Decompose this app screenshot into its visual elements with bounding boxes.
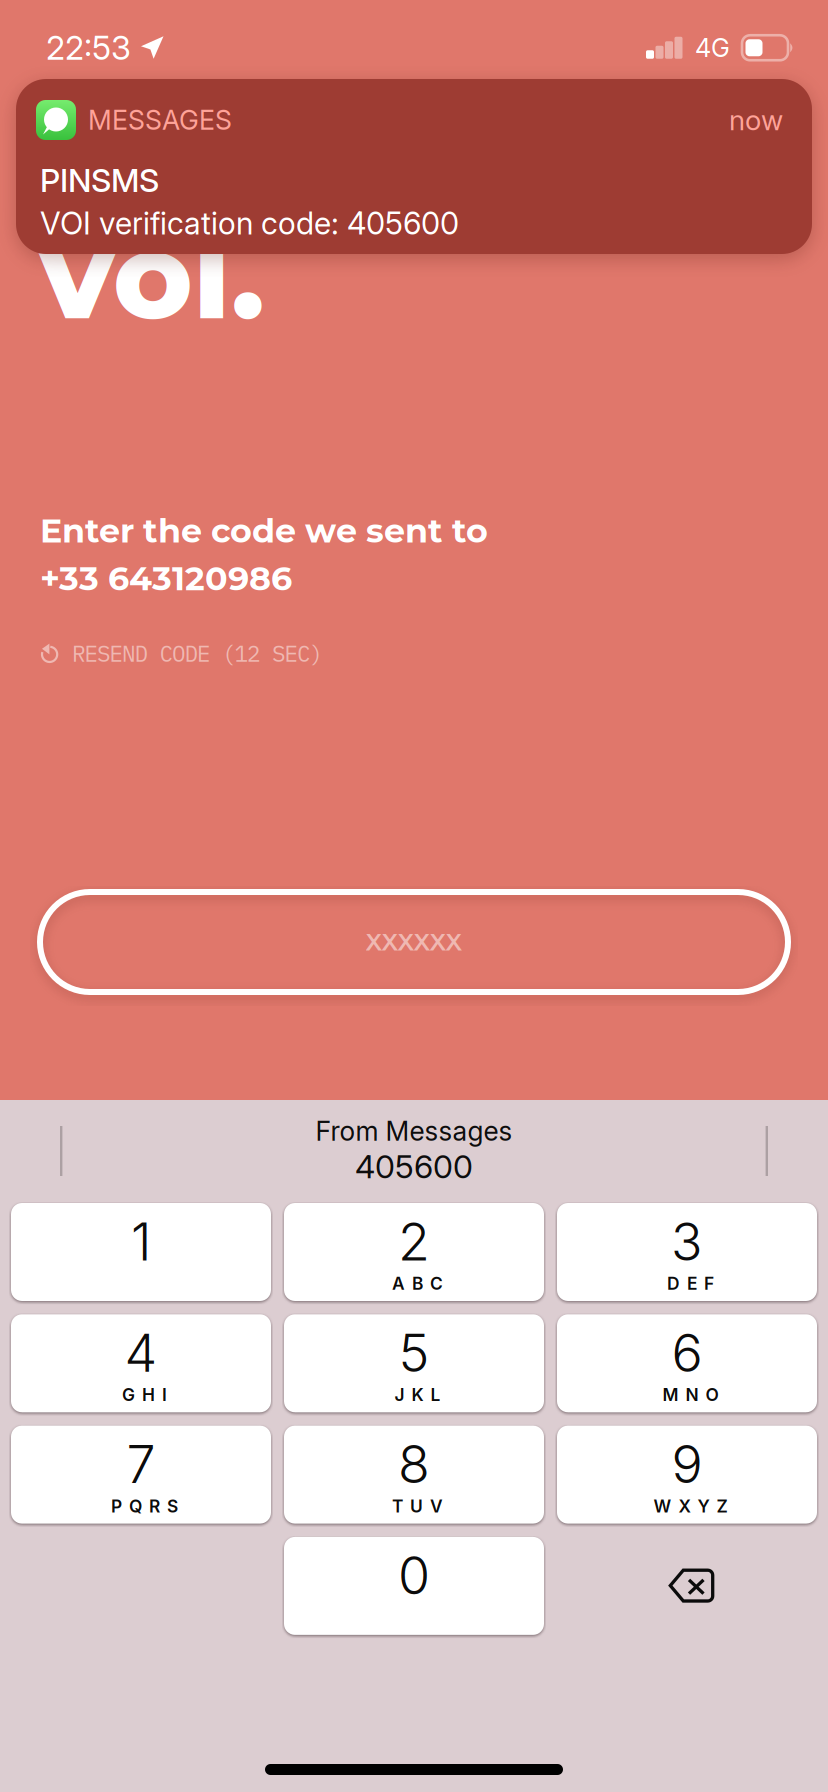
staticText: XXXXXX (365, 927, 462, 957)
staticText: 22:53 (46, 28, 131, 67)
button[interactable]: 9 (557, 1426, 817, 1524)
staticText: 9 (671, 1433, 702, 1495)
button[interactable]: 5 (284, 1314, 544, 1412)
staticText: VOI verification code: 405600 (40, 205, 459, 242)
staticText: RESEND CODE (12 SEC) (72, 638, 323, 668)
staticText: PQRS (111, 1496, 178, 1517)
button[interactable]: 2 (284, 1203, 544, 1301)
staticText: MESSAGES (88, 104, 232, 136)
staticText: voi. (40, 202, 265, 348)
button[interactable]: 0 (284, 1537, 544, 1635)
staticText: TUV (392, 1496, 443, 1517)
button[interactable]: 4 (11, 1314, 271, 1412)
button[interactable]: 7 (11, 1426, 271, 1524)
staticText: 0 (398, 1544, 430, 1607)
button[interactable]: 6 (557, 1314, 817, 1412)
staticText: JKL (394, 1384, 440, 1405)
staticText: 1 (131, 1210, 151, 1273)
staticText: 4G (695, 32, 730, 63)
staticText: 8 (398, 1433, 430, 1495)
staticText: 5 (398, 1321, 429, 1384)
staticText: ABC (392, 1273, 443, 1294)
button[interactable]: From Messages (204, 1100, 624, 1203)
button[interactable]: 8 (284, 1426, 544, 1524)
staticText: GHI (122, 1384, 167, 1405)
staticText: 6 (671, 1321, 702, 1384)
button[interactable]: 3 (557, 1203, 817, 1301)
staticText: Enter the code we sent to (40, 510, 488, 551)
staticText: 405600 (355, 1147, 473, 1186)
button[interactable]: 1 (11, 1203, 271, 1301)
staticText: 7 (126, 1433, 155, 1495)
staticText: MNO (662, 1384, 718, 1405)
staticText: now (729, 103, 783, 137)
staticText: +33 643120986 (40, 558, 292, 598)
staticText: 2 (398, 1210, 430, 1273)
staticText: PINSMS (40, 161, 159, 200)
staticText: From Messages (315, 1115, 512, 1147)
staticText: WXYZ (653, 1496, 727, 1517)
staticText: 3 (671, 1210, 703, 1273)
staticText: DEF (667, 1273, 714, 1294)
button[interactable]: MESSAGES (16, 79, 812, 254)
button[interactable]: Delete (557, 1537, 817, 1635)
staticText: 4 (124, 1321, 157, 1384)
button[interactable]: RESEND CODE (12 SEC) (0, 598, 323, 668)
